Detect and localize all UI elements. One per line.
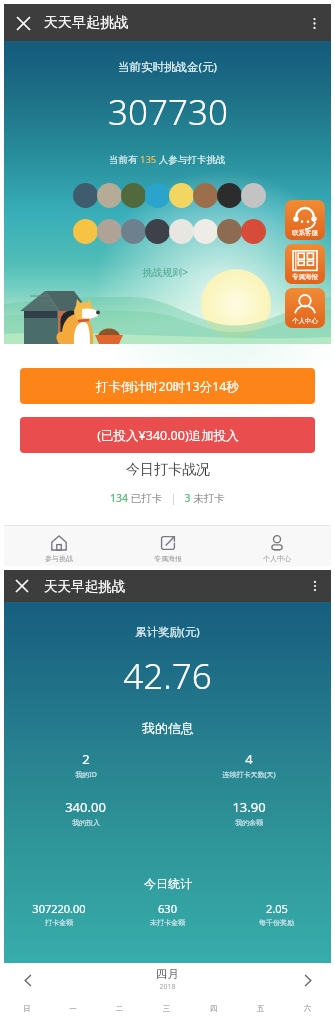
staticText: 五 bbox=[237, 1004, 284, 1013]
button[interactable]: 4 bbox=[167, 750, 331, 780]
staticText: 打卡金额 bbox=[45, 918, 73, 927]
staticText: 340.00 bbox=[65, 798, 106, 816]
staticText: 六 bbox=[284, 1004, 331, 1013]
staticText: 联系客服 bbox=[292, 229, 318, 237]
staticText: 当前实时挑战金(元) bbox=[118, 59, 217, 75]
staticText: 每千份奖励 bbox=[259, 918, 294, 927]
button[interactable]: More options bbox=[303, 574, 327, 598]
staticText: 我的ID bbox=[75, 770, 97, 780]
button[interactable]: 专属海报 bbox=[285, 244, 325, 284]
staticText: 2018 bbox=[159, 982, 176, 992]
staticText: 307730 bbox=[108, 88, 228, 136]
staticText: 我的投入 bbox=[72, 818, 100, 827]
staticText: 日 bbox=[4, 1004, 50, 1013]
staticText: 630 bbox=[158, 901, 177, 916]
button[interactable]: 个人中心 bbox=[222, 530, 331, 563]
button[interactable]: 挑战规则> bbox=[138, 263, 192, 281]
staticText: 我的余额 bbox=[235, 818, 263, 827]
button[interactable]: 2.05 bbox=[222, 901, 331, 927]
staticText: 2 bbox=[82, 750, 90, 768]
button[interactable]: 参与挑战 bbox=[4, 530, 113, 563]
staticText: 42.76 bbox=[123, 652, 212, 700]
staticText: 今日打卡战况 bbox=[126, 461, 210, 479]
staticText: 307220.00 bbox=[32, 901, 86, 916]
button[interactable]: 307220.00 bbox=[4, 901, 113, 927]
staticText: 未打卡金额 bbox=[150, 918, 185, 927]
button[interactable]: 13.90 bbox=[167, 798, 331, 827]
staticText: 2.05 bbox=[266, 901, 288, 916]
staticText: 个人中心 bbox=[263, 554, 291, 563]
button[interactable]: Previous month bbox=[16, 968, 40, 992]
staticText: 天天早起挑战 bbox=[44, 14, 128, 32]
button[interactable]: 联系客服 bbox=[285, 200, 325, 240]
staticText: 我的信息 bbox=[142, 720, 194, 736]
button[interactable]: 打卡倒计时20时13分14秒 bbox=[20, 368, 315, 404]
staticText: 三 bbox=[143, 1004, 190, 1013]
staticText: 专属海报 bbox=[154, 554, 182, 563]
button[interactable]: Next month bbox=[295, 968, 319, 992]
staticText: 134 已打卡 | 3 未打卡 bbox=[110, 491, 225, 505]
button[interactable]: Close bbox=[10, 574, 34, 598]
staticText: 四 bbox=[190, 1004, 237, 1013]
button[interactable]: 个人中心 bbox=[285, 288, 325, 328]
staticText: 参与挑战 bbox=[45, 554, 73, 563]
staticText: 13.90 bbox=[232, 798, 266, 816]
staticText: 打卡倒计时20时13分14秒 bbox=[96, 378, 239, 395]
staticText: 4 bbox=[245, 750, 253, 768]
staticText: 一 bbox=[50, 1004, 96, 1013]
button[interactable]: 专属海报 bbox=[113, 530, 222, 563]
button[interactable]: 630 bbox=[113, 901, 222, 927]
staticText: 天天早起挑战 bbox=[44, 578, 125, 595]
staticText: 专属海报 bbox=[292, 273, 318, 281]
staticText: 挑战规则> bbox=[142, 265, 188, 279]
staticText: 四月 bbox=[156, 967, 179, 981]
button[interactable]: More options bbox=[301, 10, 327, 36]
staticText: 二 bbox=[96, 1004, 143, 1013]
staticText: 个人中心 bbox=[292, 317, 318, 325]
button[interactable]: 340.00 bbox=[4, 798, 167, 827]
staticText: 当前有 135 人参与打卡挑战 bbox=[109, 153, 226, 166]
button[interactable]: Close bbox=[10, 10, 36, 36]
staticText: 累计奖励(元) bbox=[135, 624, 200, 640]
button[interactable]: (已投入¥340.00)追加投入 bbox=[20, 417, 315, 453]
button[interactable]: 2 bbox=[4, 750, 167, 780]
staticText: 今日统计 bbox=[144, 876, 192, 891]
staticText: (已投入¥340.00)追加投入 bbox=[97, 427, 239, 444]
staticText: 连续打卡天数(天) bbox=[222, 770, 276, 780]
